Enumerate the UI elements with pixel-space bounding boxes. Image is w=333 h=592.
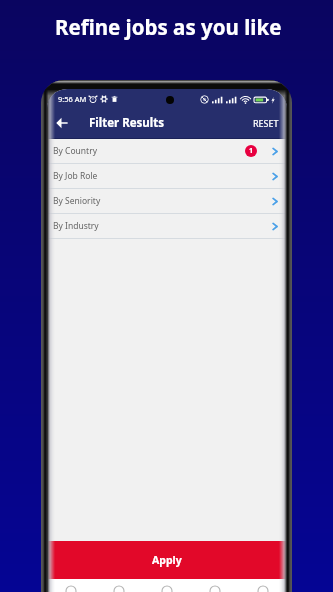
staticText: By Seniority bbox=[53, 195, 101, 207]
button[interactable]: Apply bbox=[47, 541, 287, 579]
button[interactable]: Alerts bbox=[194, 581, 236, 592]
staticText: RESET bbox=[253, 117, 279, 129]
staticText: 9:56 AM bbox=[58, 94, 87, 104]
staticText: By Job Role bbox=[53, 170, 98, 182]
button[interactable]: By Industry bbox=[47, 214, 287, 238]
staticText: 1 bbox=[249, 146, 254, 156]
button[interactable]: By Job Role bbox=[47, 164, 287, 188]
button[interactable]: Home bbox=[50, 581, 92, 592]
button[interactable]: Search bbox=[146, 581, 188, 592]
staticText: Refine jobs as you like bbox=[55, 13, 282, 41]
button[interactable]: Profile bbox=[242, 581, 284, 592]
staticText: Filter Results bbox=[89, 115, 165, 131]
button[interactable]: RESET bbox=[250, 112, 282, 134]
button[interactable]: Back bbox=[51, 112, 73, 134]
button[interactable]: By Country bbox=[47, 139, 287, 163]
button[interactable]: Jobs bbox=[98, 581, 140, 592]
staticText: By Industry bbox=[53, 220, 99, 232]
button[interactable]: By Seniority bbox=[47, 189, 287, 213]
staticText: By Country bbox=[53, 145, 98, 157]
staticText: Apply bbox=[152, 553, 182, 567]
